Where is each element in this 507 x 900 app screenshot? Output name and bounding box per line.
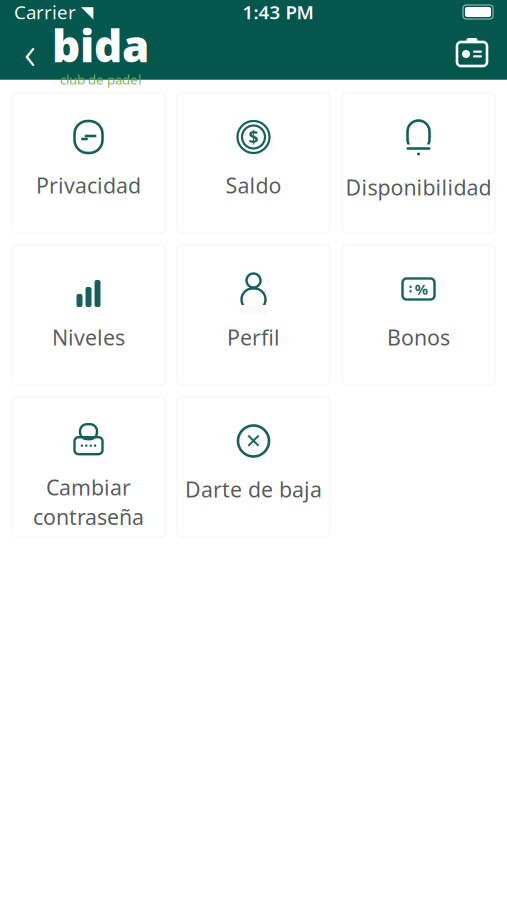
- button[interactable]: %: [342, 245, 495, 385]
- staticText: Cambiar: [46, 473, 131, 501]
- staticText: 1:43 PM: [242, 0, 313, 24]
- button[interactable]: Disponibilidad: [342, 93, 495, 233]
- button[interactable]: Cambiar: [12, 397, 165, 537]
- staticText: Niveles: [52, 323, 125, 351]
- staticText: Saldo: [225, 171, 281, 199]
- staticText: ◥: [81, 3, 93, 21]
- button[interactable]: Member card: [445, 27, 499, 77]
- staticText: bida: [52, 16, 149, 74]
- staticText: Perfil: [227, 323, 280, 351]
- staticText: Bonos: [387, 323, 450, 351]
- staticText: Darte de baja: [185, 475, 322, 503]
- button[interactable]: Back: [8, 27, 52, 77]
- button[interactable]: Niveles: [12, 245, 165, 385]
- button[interactable]: $: [177, 93, 330, 233]
- staticText: %: [415, 279, 428, 299]
- button[interactable]: Privacidad: [12, 93, 165, 233]
- staticText: contraseña: [33, 502, 144, 531]
- staticText: Privacidad: [36, 171, 141, 199]
- staticText: Disponibilidad: [345, 173, 491, 201]
- staticText: Carrier: [14, 0, 76, 24]
- button[interactable]: ✕: [177, 397, 330, 537]
- staticText: ‹: [24, 22, 36, 82]
- staticText: $: [248, 125, 258, 148]
- button[interactable]: Perfil: [177, 245, 330, 385]
- staticText: club de padel: [60, 70, 141, 88]
- staticText: ✕: [245, 430, 262, 452]
